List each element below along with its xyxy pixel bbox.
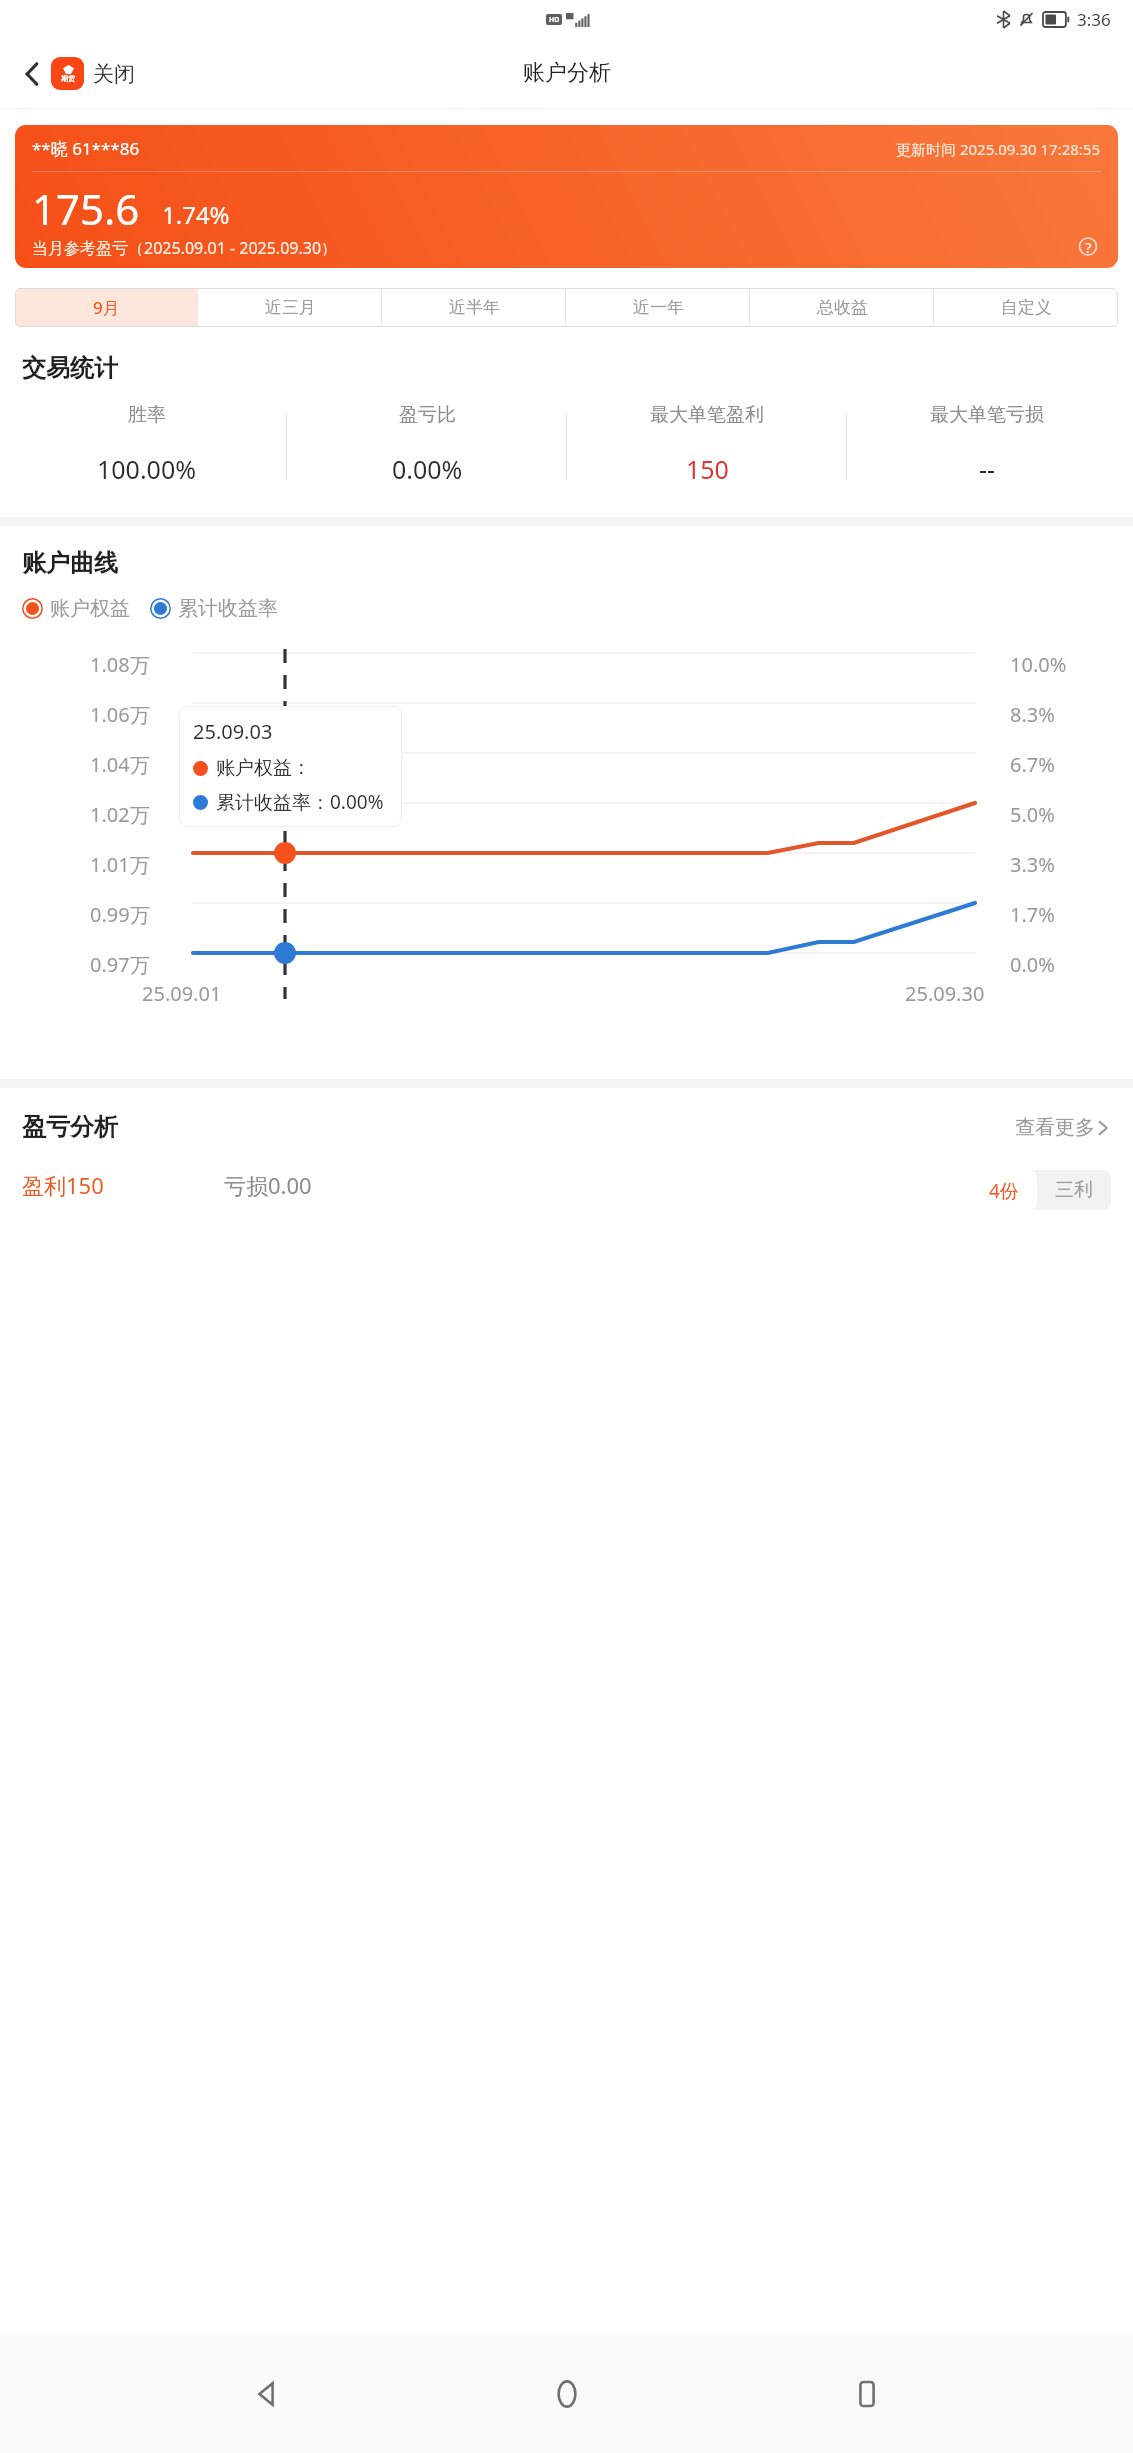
staticText: 盈亏分析 bbox=[22, 1112, 118, 1142]
staticText: 100.00% bbox=[97, 452, 196, 486]
staticText: 0.0% bbox=[1010, 951, 1055, 978]
staticText: 1.04万 bbox=[90, 751, 150, 778]
staticText: 期货 bbox=[61, 74, 75, 83]
staticText: 8.3% bbox=[1010, 701, 1055, 728]
staticText: 最大单笔亏损 bbox=[930, 403, 1044, 427]
staticText: 账户权益 bbox=[50, 596, 130, 621]
staticText: 账户权益：10,081.59 bbox=[216, 756, 388, 780]
button[interactable]: 近三月 bbox=[198, 288, 382, 327]
button[interactable]: 近半年 bbox=[382, 288, 566, 327]
staticText: 累计收益率 bbox=[178, 596, 278, 621]
button[interactable]: 账户权益 bbox=[22, 596, 130, 621]
staticText: 账户分析 bbox=[523, 59, 611, 87]
button[interactable]: 9月 bbox=[15, 288, 198, 327]
staticText: 25.09.03 bbox=[193, 718, 273, 745]
staticText: 1.01万 bbox=[90, 851, 150, 878]
staticText: 自定义 bbox=[1001, 297, 1052, 318]
staticText: 0.97万 bbox=[90, 951, 150, 978]
staticText: 亏损0.00 bbox=[224, 1170, 312, 1200]
staticText: 近一年 bbox=[633, 297, 684, 318]
button[interactable]: 总收益 bbox=[750, 288, 934, 327]
staticText: HD bbox=[549, 15, 560, 25]
button[interactable]: 4份 bbox=[971, 1170, 1037, 1210]
staticText: 三利 bbox=[1055, 1178, 1093, 1202]
staticText: 关闭 bbox=[93, 61, 135, 87]
button[interactable]: Back, 关闭 bbox=[18, 51, 141, 96]
staticText: 1.08万 bbox=[90, 651, 150, 678]
staticText: 总收益 bbox=[817, 297, 868, 318]
staticText: ? bbox=[1085, 237, 1092, 256]
staticText: 交易统计 bbox=[22, 353, 118, 383]
staticText: 累计收益率：0.00% bbox=[216, 789, 384, 815]
staticText: 3.3% bbox=[1010, 851, 1055, 878]
button[interactable]: 近一年 bbox=[566, 288, 750, 327]
staticText: 查看更多 bbox=[1015, 1115, 1095, 1140]
staticText: 账户曲线 bbox=[22, 548, 118, 578]
staticText: 盈亏比 bbox=[399, 403, 456, 427]
staticText: 5.0% bbox=[1010, 801, 1055, 828]
button[interactable]: **晓 61***86 bbox=[15, 125, 1118, 268]
staticText: 9月 bbox=[93, 296, 120, 319]
staticText: 最大单笔盈利 bbox=[650, 403, 764, 427]
staticText: -- bbox=[979, 452, 996, 486]
staticText: 近三月 bbox=[265, 297, 316, 318]
staticText: 3:36 bbox=[1077, 8, 1111, 31]
button[interactable]: Home bbox=[532, 2359, 602, 2429]
staticText: 0.00% bbox=[392, 452, 463, 486]
staticText: 4份 bbox=[989, 1178, 1019, 1202]
staticText: 25.09.01 bbox=[142, 980, 222, 1007]
staticText: 150 bbox=[686, 452, 729, 486]
staticText: 1.06万 bbox=[90, 701, 150, 728]
staticText: **晓 61***86 bbox=[32, 137, 140, 160]
staticText: 0.99万 bbox=[90, 901, 150, 928]
staticText: 1.02万 bbox=[90, 801, 150, 828]
button[interactable]: Back bbox=[231, 2359, 301, 2429]
button[interactable]: Help bbox=[1075, 237, 1101, 256]
button[interactable]: 查看更多 bbox=[1015, 1115, 1111, 1140]
button[interactable]: 三利 bbox=[1037, 1170, 1111, 1210]
staticText: 更新时间 2025.09.30 17:28:55 bbox=[896, 139, 1101, 159]
staticText: 1.7% bbox=[1010, 901, 1055, 928]
staticText: 当月参考盈亏（2025.09.01 - 2025.09.30） bbox=[32, 237, 338, 256]
staticText: 6.7% bbox=[1010, 751, 1055, 778]
staticText: 25.09.30 bbox=[905, 980, 985, 1007]
staticText: 近半年 bbox=[449, 297, 500, 318]
button[interactable]: Recents bbox=[832, 2359, 902, 2429]
staticText: 10.0% bbox=[1010, 651, 1067, 678]
button[interactable]: 累计收益率 bbox=[150, 596, 278, 621]
button[interactable]: 自定义 bbox=[934, 288, 1118, 327]
staticText: 盈利150 bbox=[22, 1170, 104, 1200]
staticText: 1.74% bbox=[162, 198, 230, 231]
staticText: 175.6 bbox=[32, 180, 140, 237]
staticText: 胜率 bbox=[128, 403, 166, 427]
